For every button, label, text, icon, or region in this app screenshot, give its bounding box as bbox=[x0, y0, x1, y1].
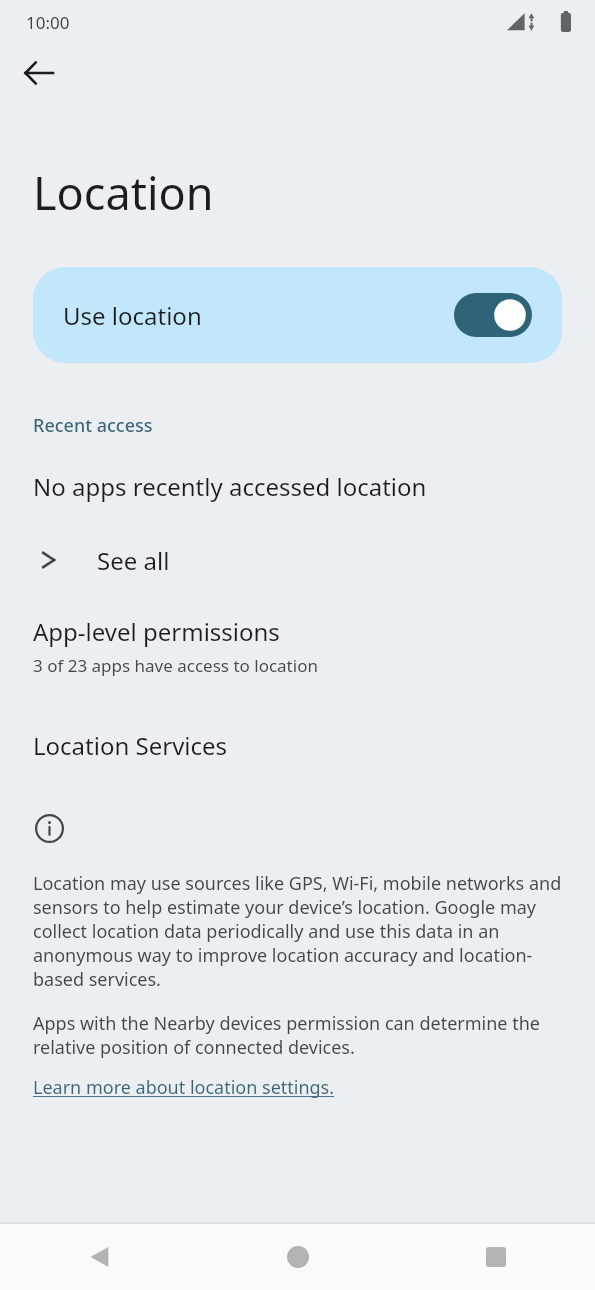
button[interactable]: Learn more about location settings. bbox=[33, 1075, 335, 1100]
button[interactable]: Back bbox=[0, 1224, 199, 1290]
staticText: 3 of 23 apps have access to location bbox=[33, 654, 318, 677]
button[interactable]: App-level permissions bbox=[0, 613, 595, 681]
button[interactable]: Location Services bbox=[0, 727, 595, 764]
staticText: App-level permissions bbox=[33, 615, 280, 648]
staticText: Learn more about location settings. bbox=[33, 1075, 335, 1100]
staticText: Apps with the Nearby devices permission … bbox=[33, 1011, 567, 1059]
button[interactable]: Recent apps bbox=[397, 1224, 595, 1290]
staticText: Location may use sources like GPS, Wi-Fi… bbox=[33, 871, 567, 991]
staticText: Use location bbox=[63, 299, 454, 332]
staticText: 10:00 bbox=[26, 11, 70, 34]
button[interactable]: Back bbox=[10, 44, 68, 102]
button[interactable]: Home bbox=[199, 1224, 397, 1290]
staticText: Location Services bbox=[33, 729, 228, 762]
button[interactable]: See all bbox=[0, 531, 595, 589]
staticText: Location bbox=[33, 162, 214, 223]
button[interactable]: Use location bbox=[33, 267, 562, 363]
staticText: See all bbox=[97, 544, 170, 577]
staticText: Recent access bbox=[33, 413, 153, 438]
staticText: No apps recently accessed location bbox=[33, 470, 427, 503]
